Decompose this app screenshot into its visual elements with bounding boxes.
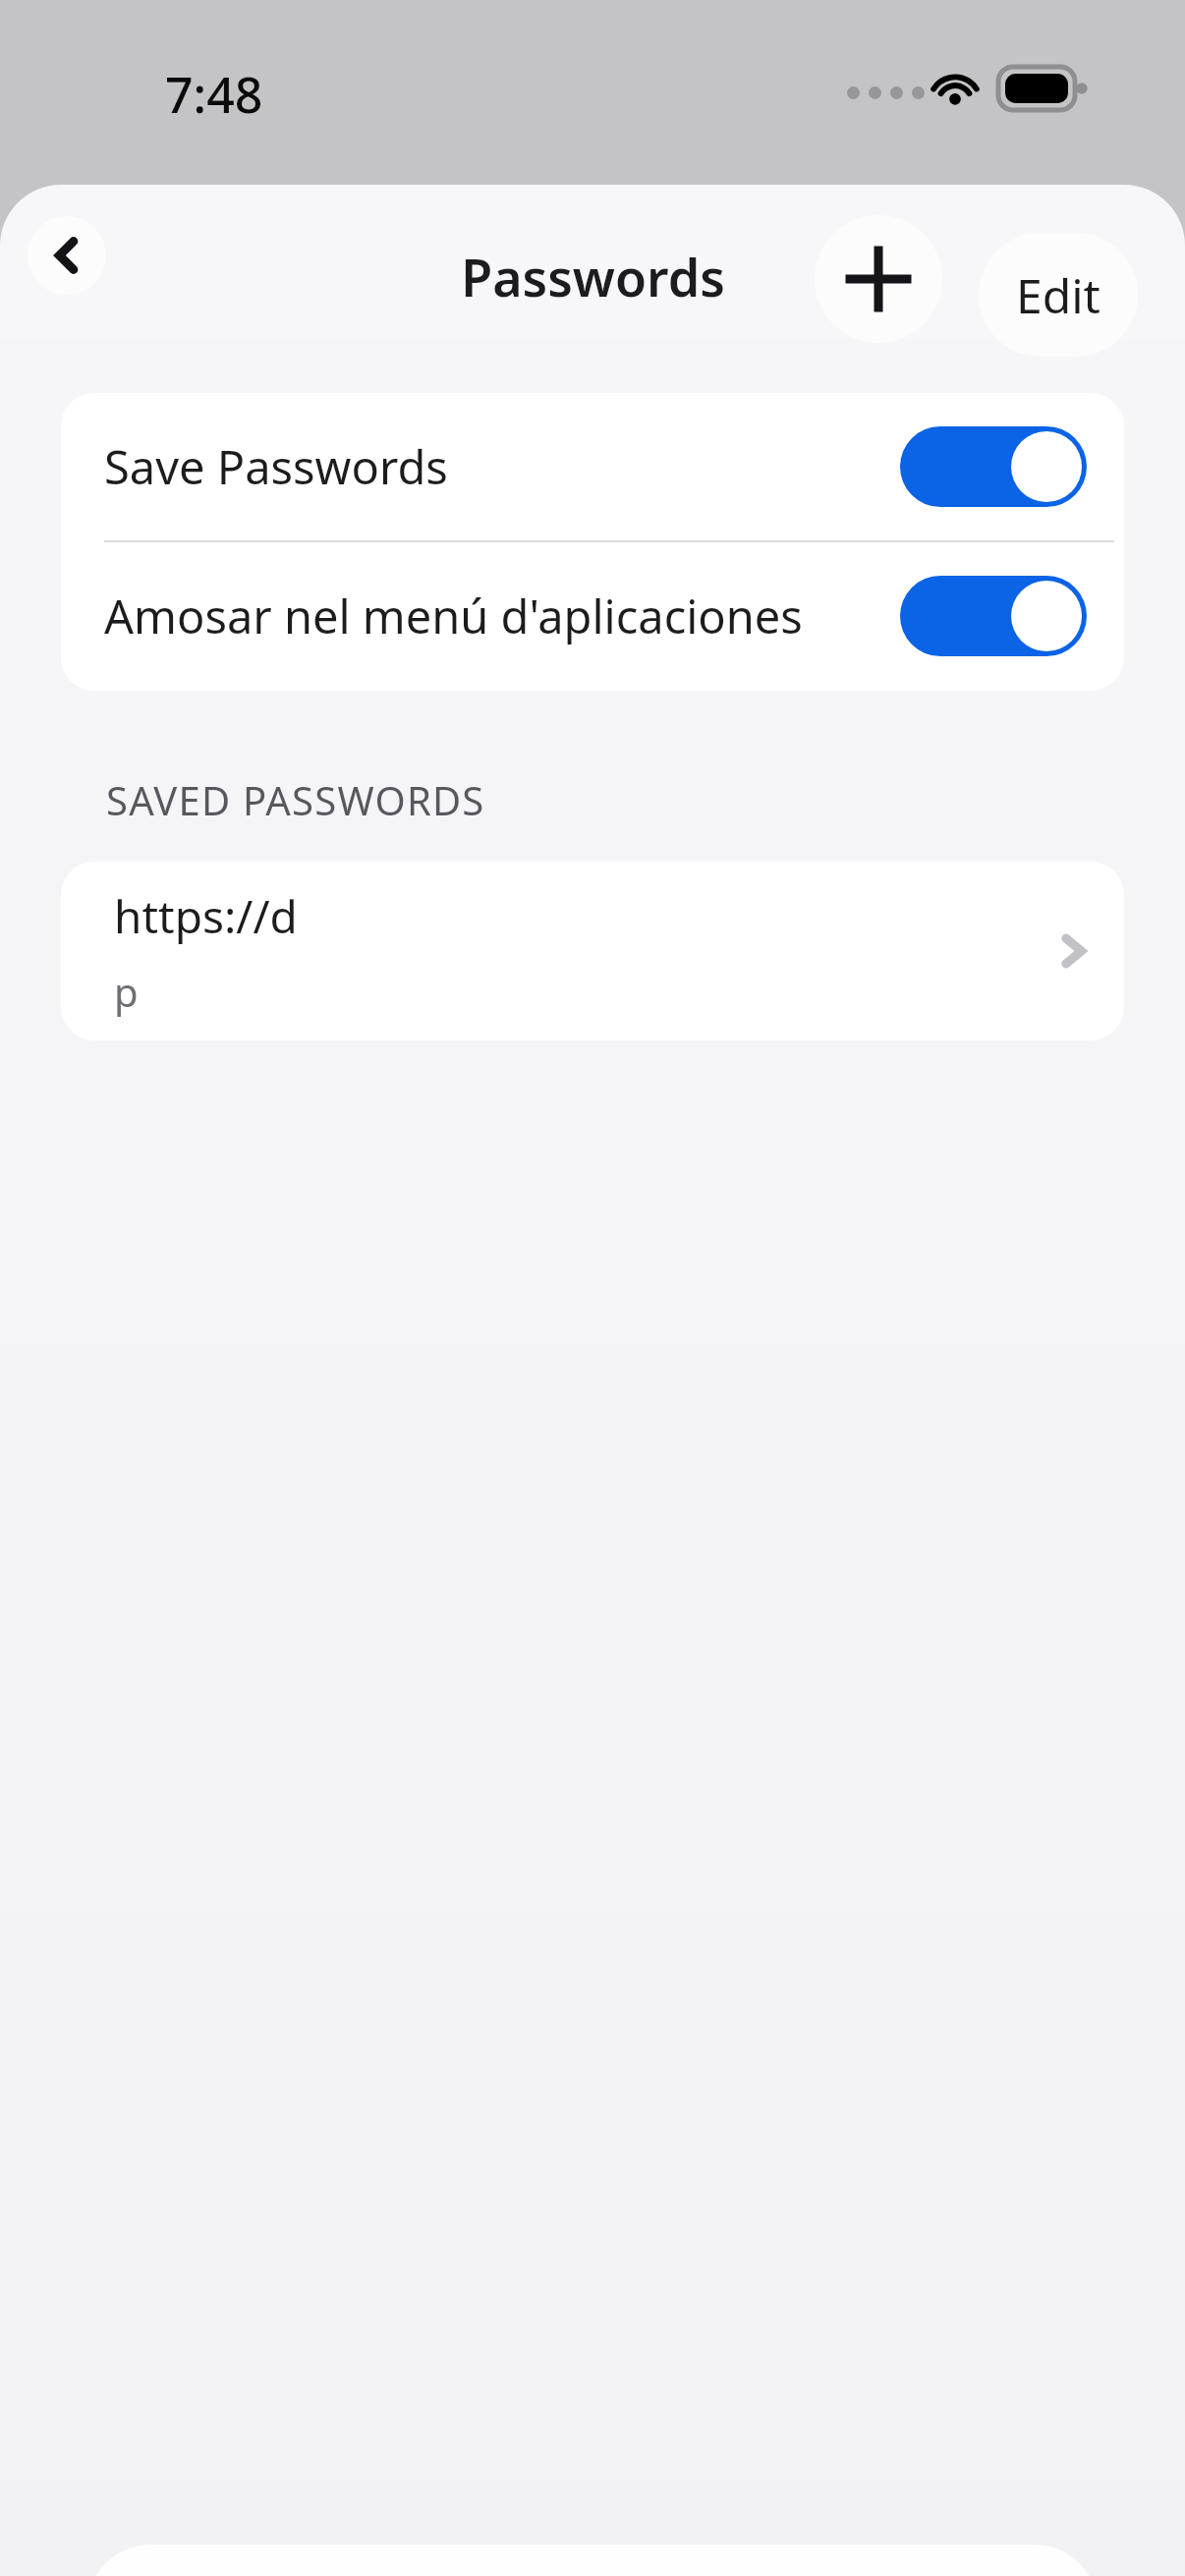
staticText: SAVED PASSWORDS [106, 773, 485, 826]
button[interactable]: Edit [979, 233, 1138, 357]
staticText: p [114, 965, 139, 1018]
button[interactable]: Amosar nel menú d'aplicaciones [61, 542, 1124, 690]
staticText: Passwords [461, 242, 725, 311]
button[interactable]: Add password [815, 215, 942, 343]
staticText: https://d [114, 885, 298, 947]
staticText: Amosar nel menú d'aplicaciones [104, 585, 900, 647]
button[interactable]: Save Passwords [61, 393, 1124, 540]
staticText: Edit [1016, 263, 1100, 327]
staticText: Save Passwords [104, 435, 900, 498]
staticText: 7:48 [165, 61, 263, 128]
button[interactable]: https://d [61, 862, 1124, 1040]
button[interactable]: Back [28, 216, 106, 295]
